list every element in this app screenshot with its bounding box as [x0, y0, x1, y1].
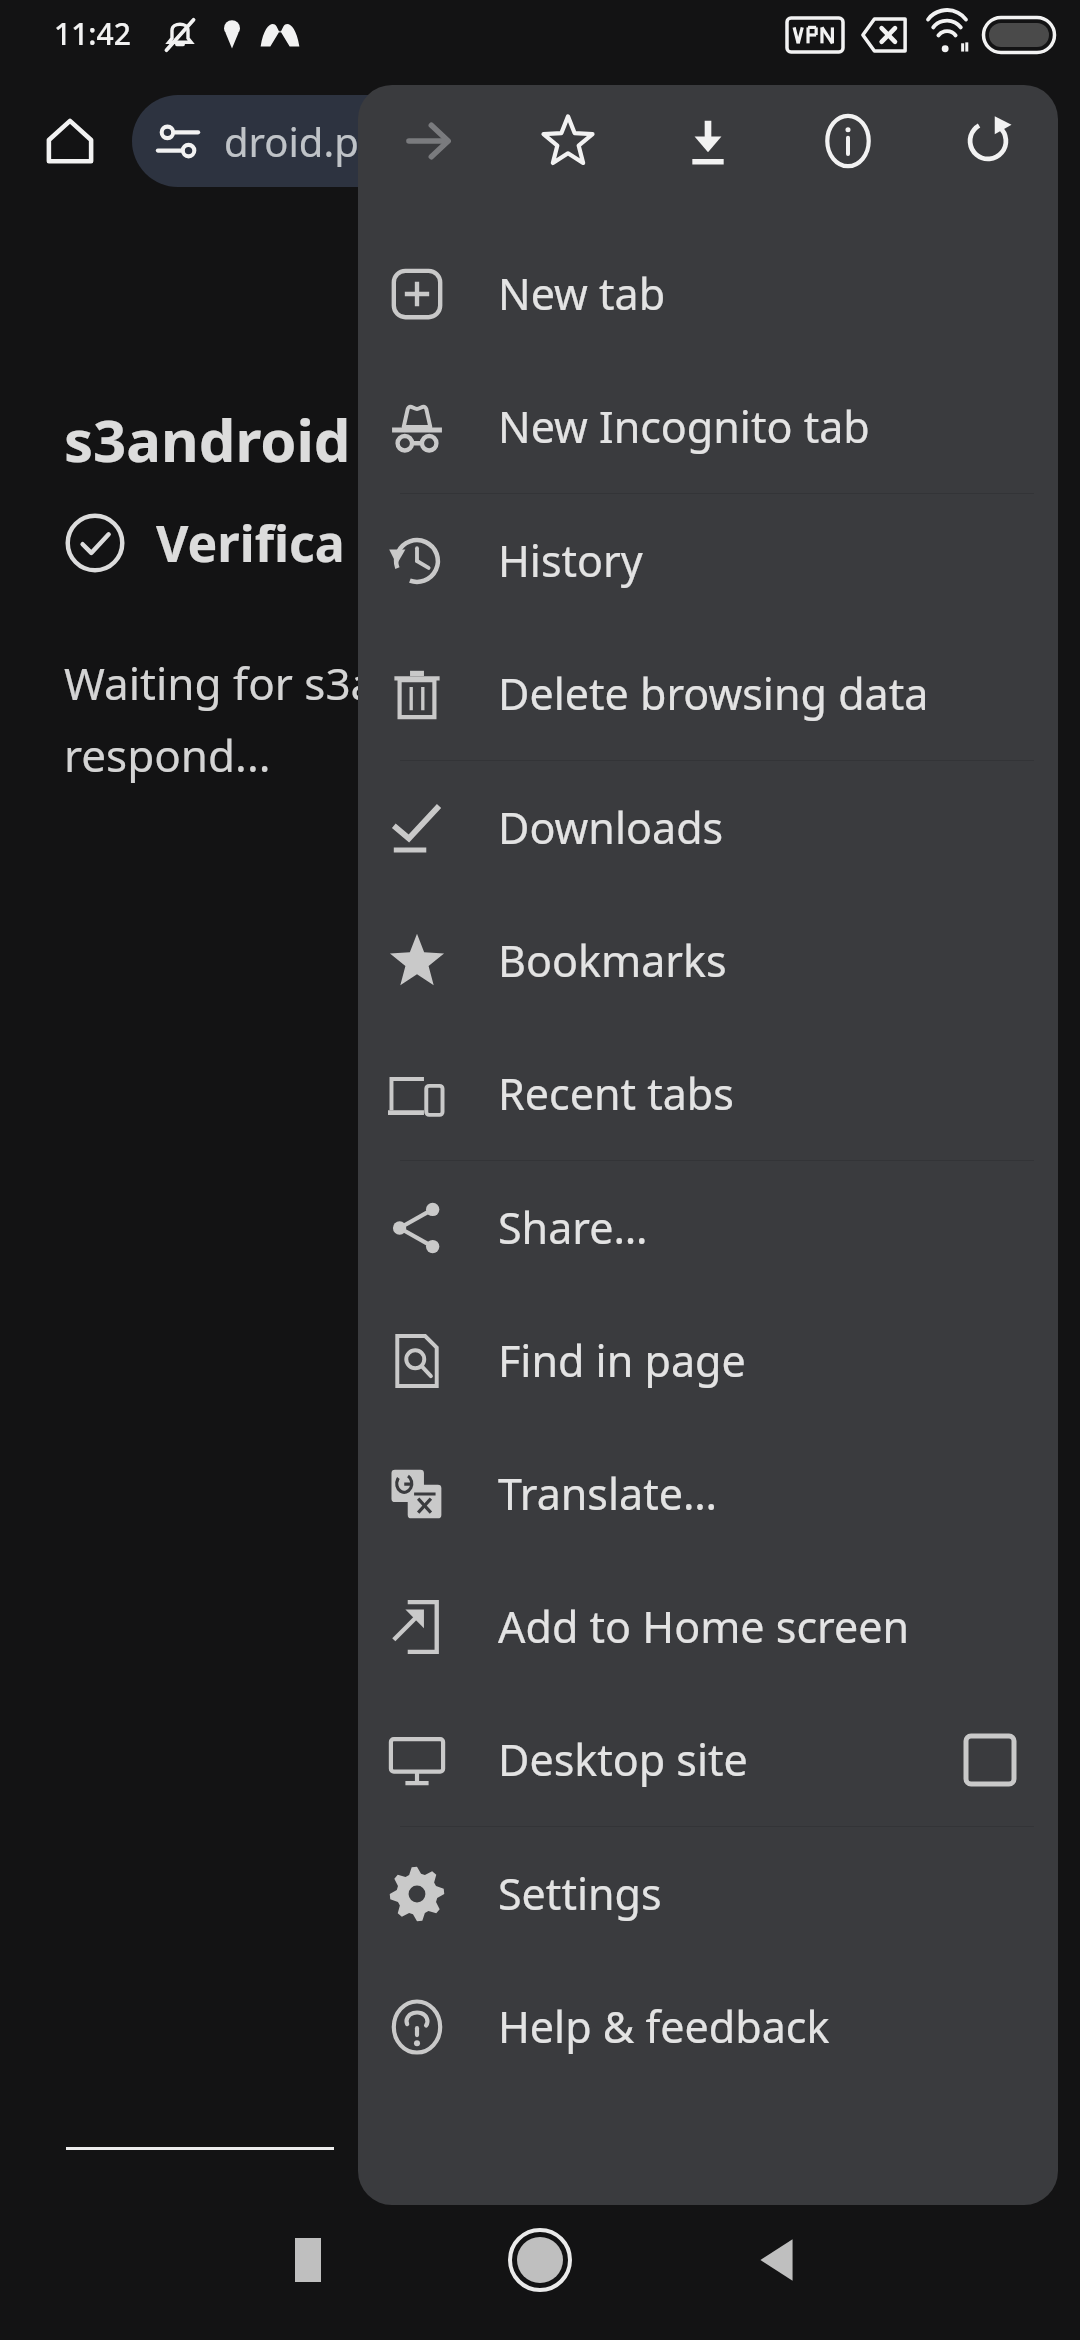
- button[interactable]: History: [358, 494, 1058, 627]
- staticText: History: [498, 531, 1058, 590]
- staticText: Share…: [498, 1198, 1058, 1257]
- button[interactable]: Recent tabs: [358, 1027, 1058, 1160]
- button[interactable]: Help & feedback: [358, 1960, 1058, 2093]
- button[interactable]: Add to Home screen: [358, 1560, 1058, 1693]
- staticText: respond...: [64, 725, 271, 785]
- button[interactable]: Desktop site: [358, 1693, 1058, 1826]
- staticText: New Incognito tab: [498, 397, 1058, 456]
- staticText: Delete browsing data: [498, 664, 1058, 723]
- staticText: s3android: [64, 400, 351, 479]
- staticText: droid.p: [224, 114, 359, 168]
- staticText: Help & feedback: [498, 1997, 1058, 2056]
- button[interactable]: Bookmark: [498, 85, 638, 197]
- button[interactable]: New Incognito tab: [358, 360, 1058, 493]
- staticText: Recent tabs: [498, 1064, 1058, 1123]
- staticText: Desktop site: [498, 1730, 966, 1789]
- button[interactable]: Bookmarks: [358, 894, 1058, 1027]
- button[interactable]: Forward: [358, 85, 498, 197]
- button[interactable]: Reload: [918, 85, 1058, 197]
- button[interactable]: Share…: [358, 1161, 1058, 1294]
- button[interactable]: Find in page: [358, 1294, 1058, 1427]
- button[interactable]: Home: [492, 2212, 588, 2308]
- button[interactable]: Download page: [638, 85, 778, 197]
- staticText: Find in page: [498, 1331, 1058, 1390]
- button[interactable]: Downloads: [358, 761, 1058, 894]
- staticText: Downloads: [498, 798, 1058, 857]
- staticText: Bookmarks: [498, 931, 1058, 990]
- staticText: New tab: [498, 264, 1058, 323]
- button[interactable]: Delete browsing data: [358, 627, 1058, 760]
- staticText: Translate…: [498, 1464, 1058, 1523]
- button[interactable]: Home: [28, 99, 112, 183]
- button[interactable]: droid.p: [132, 95, 692, 187]
- button[interactable]: Page info: [778, 85, 918, 197]
- staticText: Waiting for s3a: [64, 653, 376, 713]
- staticText: 11:42: [54, 13, 131, 54]
- button[interactable]: Settings: [358, 1827, 1058, 1960]
- staticText: Add to Home screen: [498, 1597, 1058, 1656]
- button[interactable]: Back: [728, 2212, 824, 2308]
- staticText: Verifica: [156, 509, 345, 577]
- button[interactable]: Recent apps: [260, 2212, 356, 2308]
- button[interactable]: New tab: [358, 227, 1058, 360]
- button[interactable]: Translate…: [358, 1427, 1058, 1560]
- staticText: Settings: [498, 1864, 1058, 1923]
